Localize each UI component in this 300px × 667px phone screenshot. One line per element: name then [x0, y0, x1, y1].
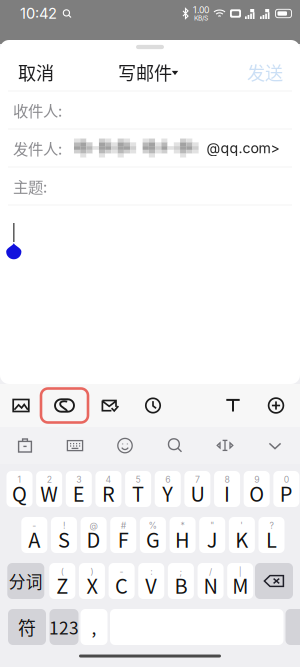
staticText: / [209, 566, 212, 577]
staticText: 分词 [9, 569, 43, 593]
button[interactable]: 0 [273, 471, 299, 507]
button[interactable]: 符 [8, 609, 46, 645]
button[interactable]: 8 [214, 471, 240, 507]
staticText: 取消 [18, 59, 54, 85]
button[interactable]: Delete [255, 563, 293, 599]
staticText: Z [56, 570, 68, 599]
staticText: ? [269, 520, 273, 531]
staticText: 2 [47, 474, 52, 485]
button[interactable]: 5 [125, 471, 151, 507]
button[interactable]: ? [258, 517, 284, 553]
button[interactable]: 写邮件 [118, 52, 194, 92]
button[interactable]: 1 [6, 471, 32, 507]
button[interactable]: 2 [36, 471, 62, 507]
staticText: 发件人: [13, 137, 62, 159]
staticText: 7 [195, 474, 200, 485]
staticText: 主题: [13, 175, 47, 197]
staticText: # [121, 520, 126, 531]
button[interactable]: ; [168, 563, 194, 599]
button[interactable]: Insert link [42, 385, 86, 425]
staticText: % [148, 520, 157, 531]
staticText: P [280, 478, 293, 507]
staticText: N [204, 570, 218, 599]
button[interactable]: 9 [244, 471, 270, 507]
staticText: 6 [165, 474, 170, 485]
button[interactable]: | [227, 563, 253, 599]
staticText: ' [240, 520, 243, 531]
staticText: 发送 [247, 59, 283, 85]
staticText: - [32, 520, 36, 531]
button[interactable]: 取消 [4, 52, 68, 92]
button[interactable]: 6 [155, 471, 181, 507]
staticText: X [86, 570, 97, 599]
button[interactable]: 3 [66, 471, 92, 507]
staticText: @qq.com> [206, 139, 279, 156]
button[interactable]: 分词 [7, 563, 44, 599]
staticText: 收件人: [13, 99, 62, 121]
staticText: ! [63, 520, 65, 531]
button[interactable]: Clipboard [0, 428, 50, 462]
button[interactable]: @ [81, 517, 107, 553]
staticText: 1.00 [193, 5, 209, 15]
staticText: U [190, 478, 204, 507]
staticText: G [146, 524, 160, 553]
staticText: V [145, 570, 157, 599]
button[interactable]: Schedule send [132, 385, 174, 425]
staticText: , [91, 614, 96, 640]
staticText: 5 [136, 474, 141, 485]
staticText: KB/S [194, 14, 208, 22]
staticText: C [115, 570, 128, 599]
button[interactable]: Text format [212, 385, 254, 425]
button[interactable]: Emoji [100, 428, 150, 462]
staticText: * [181, 520, 185, 531]
staticText: 符 [18, 614, 36, 640]
staticText: M [232, 570, 248, 599]
button[interactable]: - [21, 517, 47, 553]
button[interactable]: 7 [184, 471, 210, 507]
button[interactable]: " [199, 517, 225, 553]
staticText: ( [61, 566, 64, 577]
button[interactable]: # [110, 517, 136, 553]
staticText: D [87, 524, 101, 553]
button[interactable]: * [170, 517, 196, 553]
staticText: O [249, 478, 264, 507]
staticText: E [73, 478, 85, 507]
staticText: 8 [224, 474, 229, 485]
staticText: " [210, 520, 214, 531]
staticText: B [174, 570, 187, 599]
button[interactable]: ! [51, 517, 77, 553]
staticText: W [40, 478, 58, 507]
staticText: 写邮件 [118, 59, 172, 85]
staticText: Q [12, 478, 27, 507]
staticText: ) [90, 566, 93, 577]
button[interactable]: Move cursor [200, 428, 250, 462]
button[interactable]: 123 [49, 609, 78, 645]
button[interactable]: Insert photo [1, 385, 41, 425]
staticText: A [28, 524, 40, 553]
button[interactable]: Search [150, 428, 200, 462]
button[interactable]: Keyboard layout [50, 428, 100, 462]
staticText: : [150, 566, 152, 577]
button[interactable]: 4 [95, 471, 121, 507]
staticText: L [266, 524, 277, 553]
button[interactable]: / [198, 563, 224, 599]
staticText: J [207, 524, 218, 553]
staticText: 3 [76, 474, 81, 485]
button[interactable]: More [254, 385, 298, 425]
staticText: H [175, 524, 190, 553]
button[interactable]: Mail receipt [88, 385, 132, 425]
button[interactable]: ( [49, 563, 75, 599]
button[interactable]: ) [79, 563, 105, 599]
button[interactable]: Hide keyboard [250, 428, 300, 462]
staticText: 10:42 [20, 5, 57, 22]
button[interactable]: % [140, 517, 166, 553]
button[interactable]: , [80, 609, 107, 645]
button[interactable]: - [109, 563, 135, 599]
button[interactable]: : [138, 563, 164, 599]
button[interactable]: 发送 [234, 52, 296, 92]
staticText: T [132, 478, 144, 507]
staticText: Y [162, 478, 173, 507]
button[interactable]: ' [229, 517, 255, 553]
